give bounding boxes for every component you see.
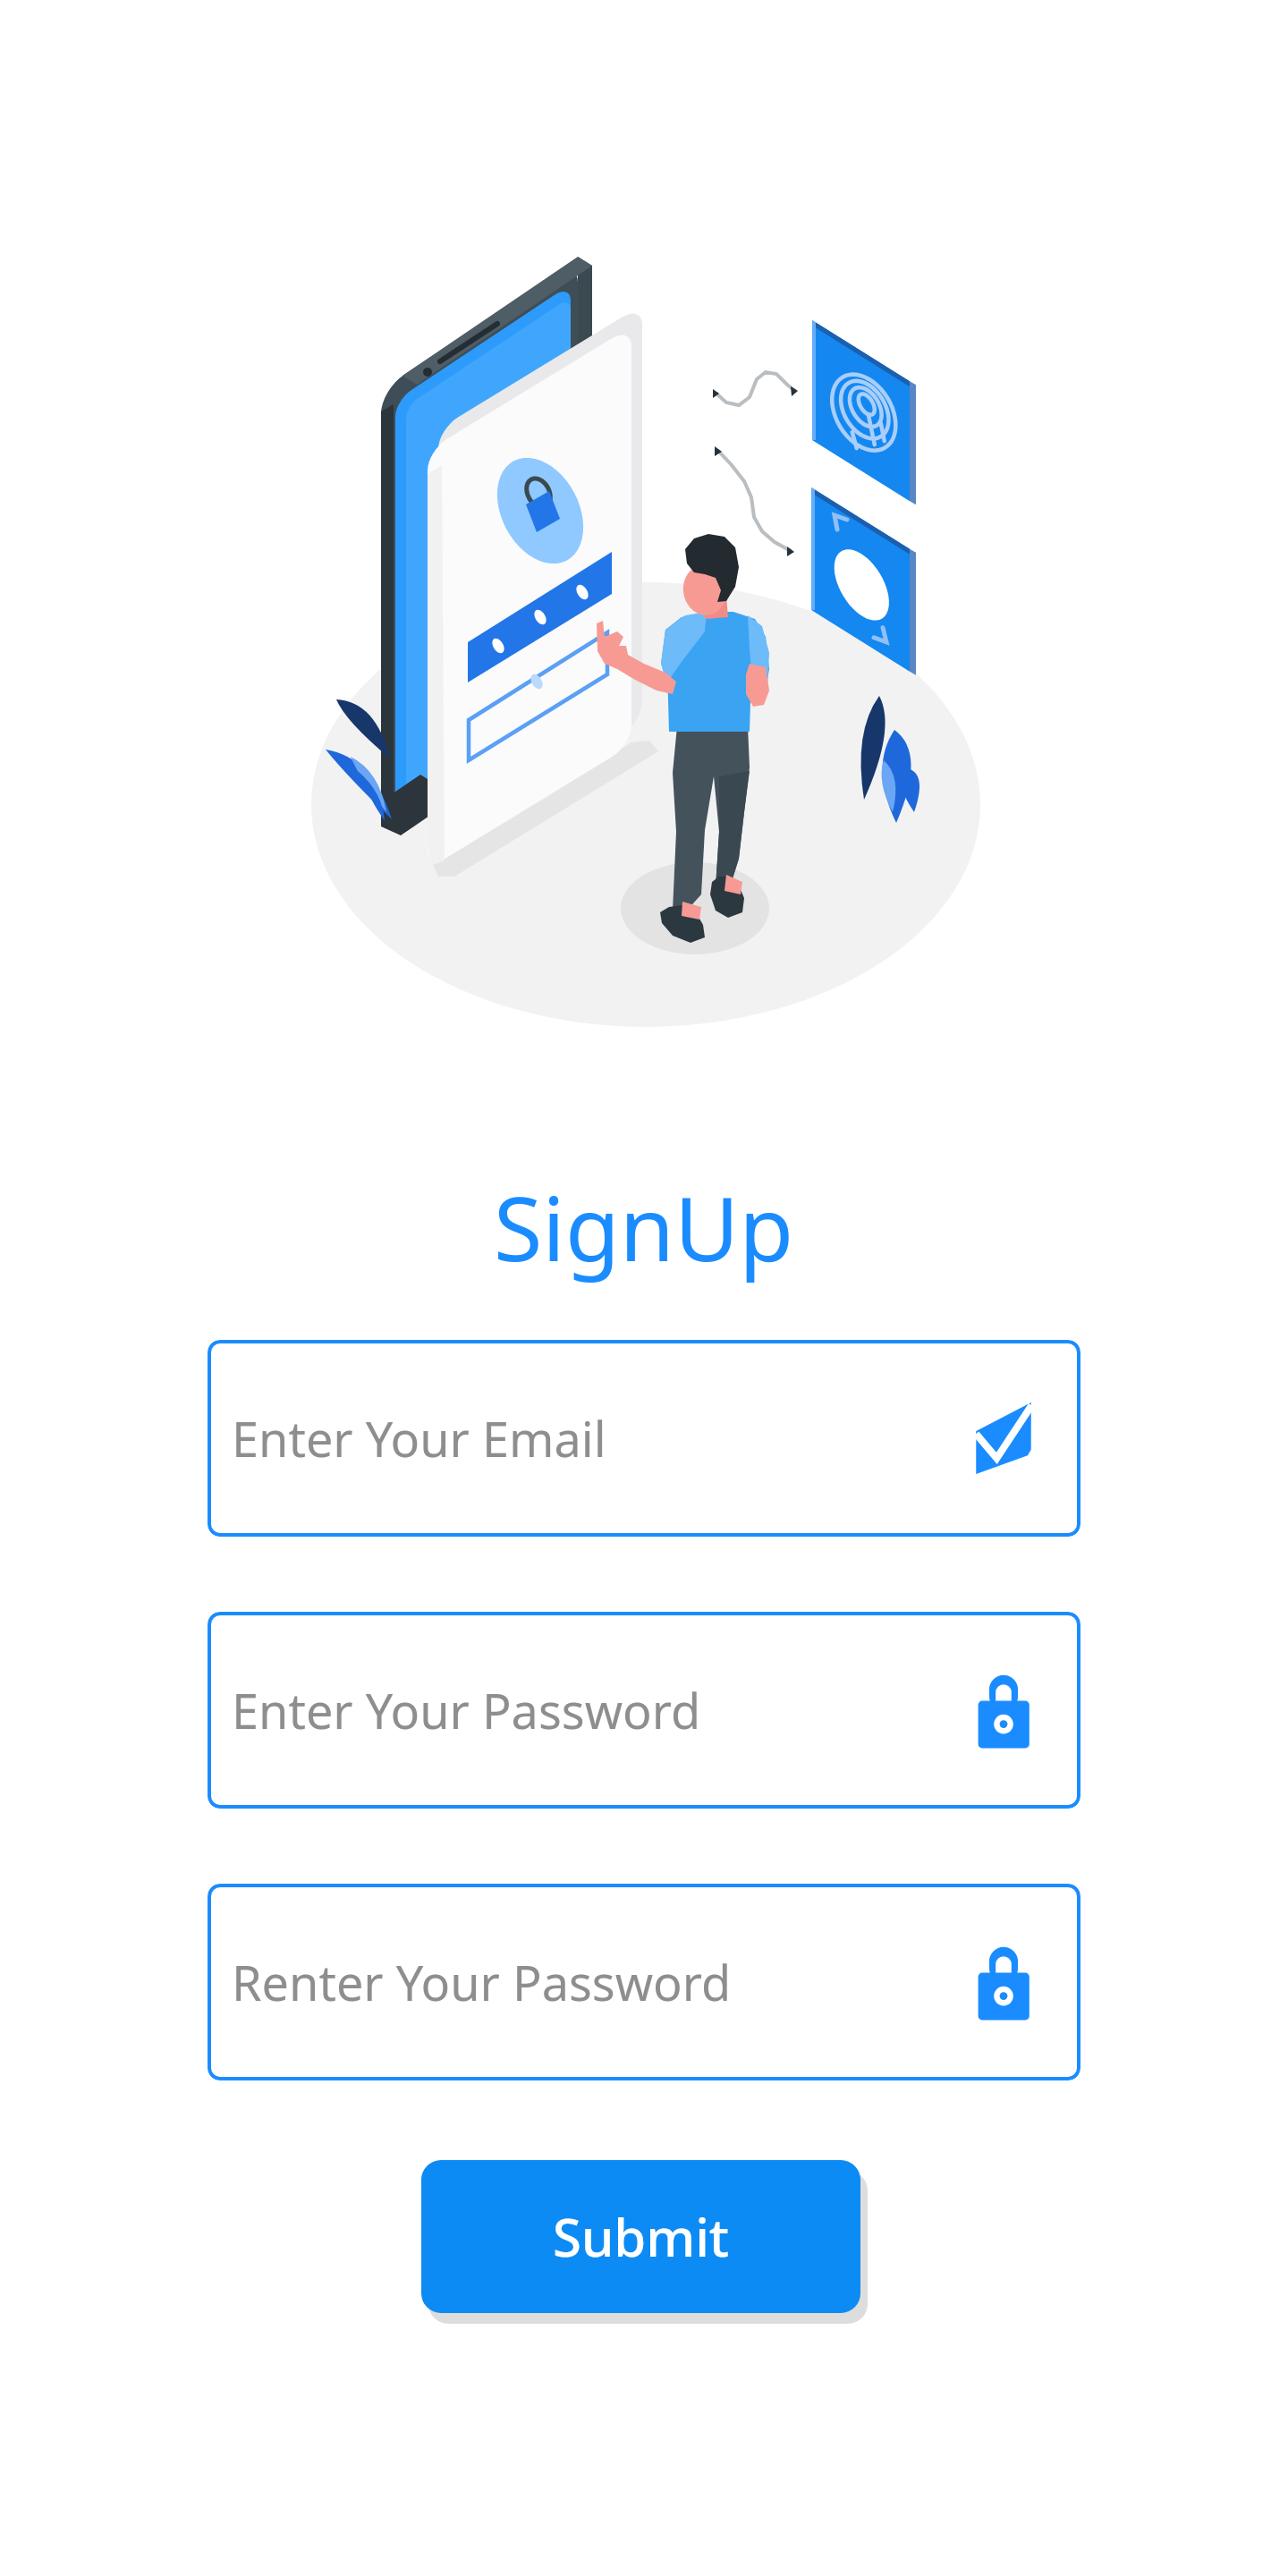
staticText: Submit: [553, 2201, 730, 2272]
button[interactable]: Enter Your Password: [208, 1612, 1080, 1809]
button[interactable]: Enter Your Email: [208, 1340, 1080, 1537]
button[interactable]: Renter Your Password: [208, 1884, 1080, 2080]
staticText: SignUp: [494, 1166, 794, 1287]
staticText: Enter Your Password: [232, 1677, 701, 1743]
staticText: Renter Your Password: [232, 1949, 732, 2015]
staticText: Enter Your Email: [232, 1405, 606, 1471]
button[interactable]: Submit: [421, 2160, 860, 2313]
